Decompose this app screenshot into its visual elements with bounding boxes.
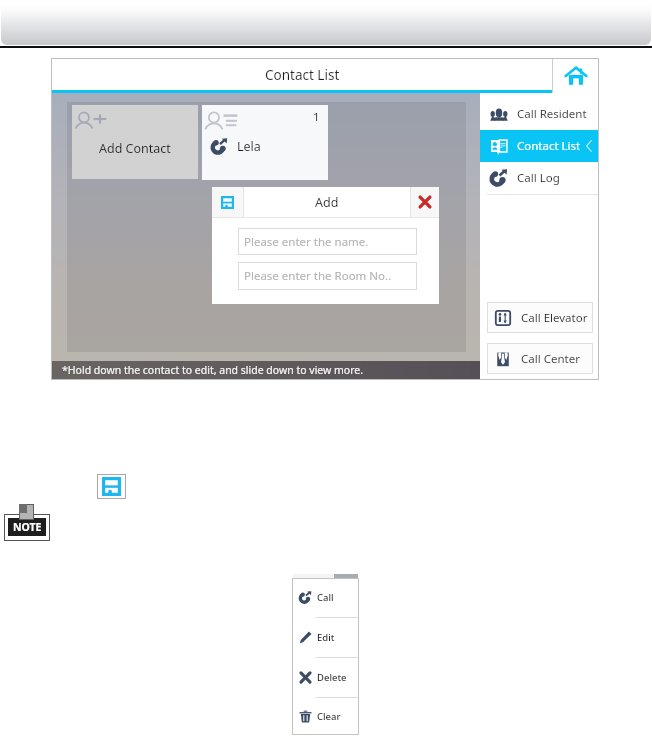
staticText: Add [315,194,339,211]
staticText: 1 [313,109,320,125]
staticText: Clear [317,710,341,723]
button[interactable]: Call Center [487,343,593,374]
button[interactable]: Call Log [480,162,598,194]
staticText: Call Center [521,351,580,367]
staticText: NOTE [13,520,42,534]
staticText: Contact List [265,66,340,84]
staticText: Lela [237,138,261,155]
button[interactable]: Save [212,187,243,217]
staticText: Call Log [517,170,560,186]
staticText: Add Contact [99,140,171,157]
staticText: Delete [317,671,347,684]
button[interactable]: Please enter the Room No.. [238,262,417,290]
button[interactable]: Call Resident [480,98,598,130]
button[interactable]: Clear [292,698,359,735]
staticText: Edit [317,631,335,644]
button[interactable]: Delete [292,658,359,697]
button[interactable]: Call Elevator [487,302,593,333]
staticText: Call Elevator [521,310,588,326]
button[interactable]: Close [411,187,439,217]
staticText: Call [317,591,334,604]
button[interactable]: Home [553,59,598,93]
staticText: Please enter the Room No.. [244,268,392,284]
button[interactable]: Edit [292,618,359,657]
button[interactable]: Please enter the name. [238,228,417,255]
button[interactable]: Add Contact [72,105,198,179]
button[interactable]: 1 [202,105,328,180]
staticText: Call Resident [517,106,587,122]
staticText: Contact List [517,138,581,154]
staticText: Please enter the name. [244,234,369,250]
button[interactable]: Call [292,578,359,617]
button[interactable]: Contact List [480,130,598,162]
staticText: *Hold down the contact to edit, and slid… [62,363,364,377]
button[interactable]: Contact List [52,59,552,93]
